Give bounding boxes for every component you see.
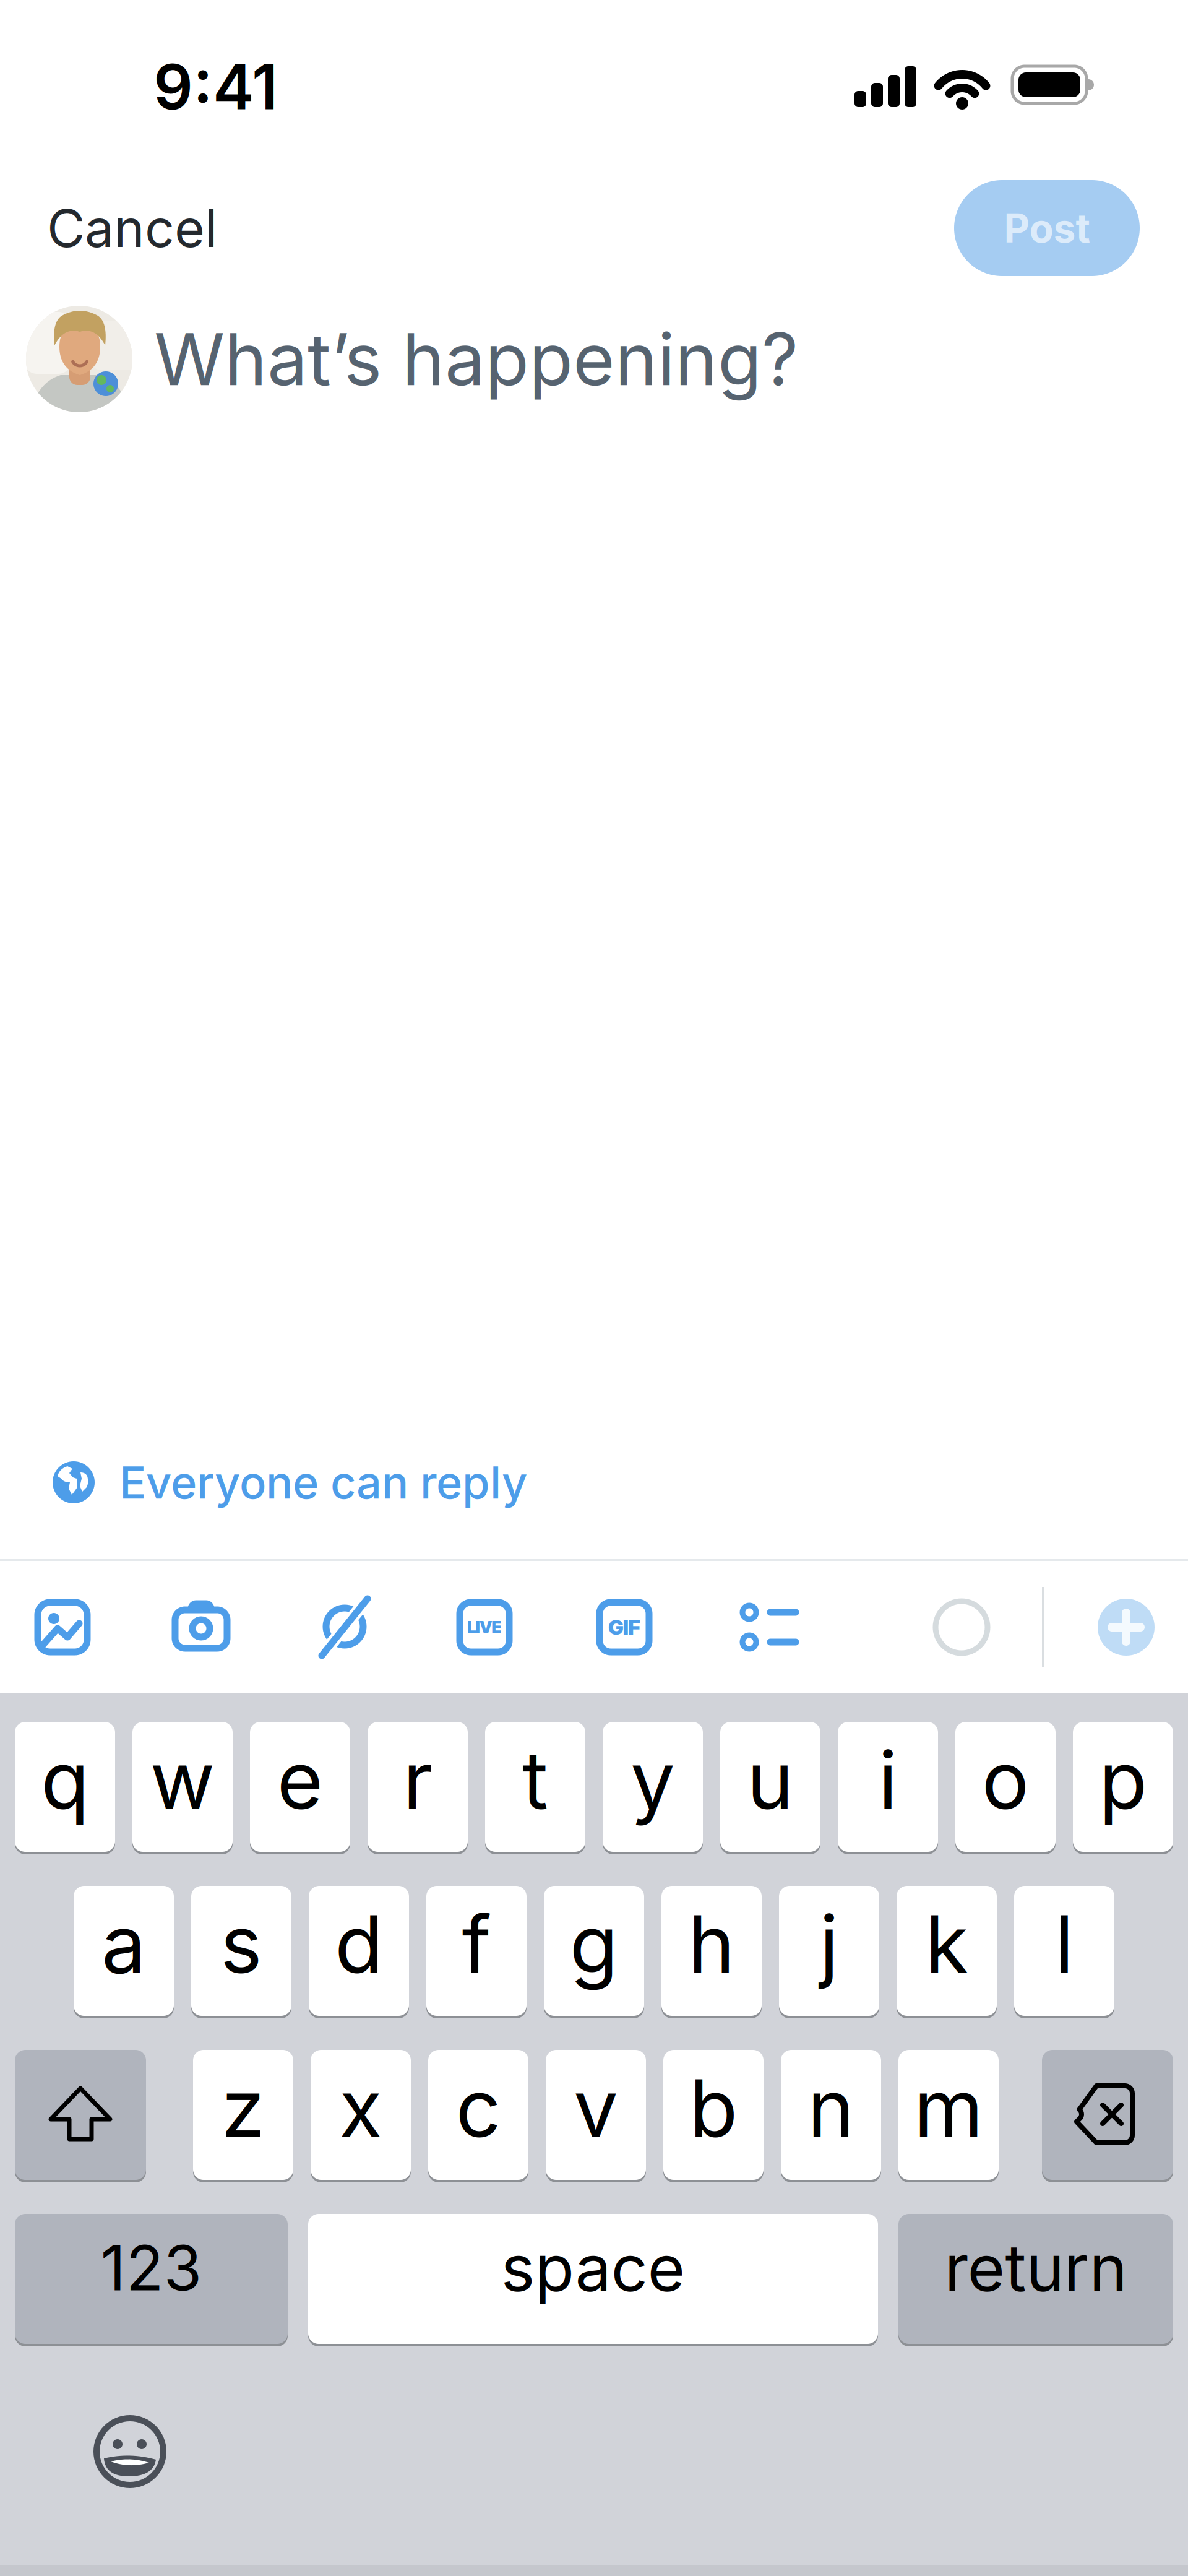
button[interactable]: e [250,1722,350,1854]
staticText: r [403,1733,433,1827]
staticText: f [462,1897,491,1991]
button[interactable] [26,306,132,412]
button[interactable]: x [311,2050,411,2182]
staticText: What’s happening? [154,317,798,401]
button[interactable] [1098,1599,1155,1656]
staticText: e [277,1733,323,1827]
button[interactable] [34,1599,91,1656]
staticText: u [747,1733,794,1827]
staticText: y [631,1733,675,1827]
staticText: t [522,1733,548,1827]
staticText: Post [1004,205,1090,251]
button[interactable]: p [1073,1722,1173,1854]
button[interactable]: Post [954,180,1140,276]
staticText: k [925,1897,968,1991]
button[interactable]: n [781,2050,881,2182]
staticText: 123 [101,2231,202,2304]
button[interactable] [738,1599,798,1656]
button[interactable]: o [955,1722,1056,1854]
button[interactable] [1042,2050,1173,2182]
staticText: p [1099,1733,1147,1827]
button[interactable]: space [308,2214,878,2346]
button[interactable]: t [485,1722,585,1854]
staticText: s [220,1897,262,1991]
staticText: a [101,1897,146,1991]
staticText: q [41,1733,89,1827]
button[interactable]: a [74,1886,174,2018]
button[interactable]: y [603,1722,703,1854]
button[interactable]: j [779,1886,879,2018]
staticText: 9:41 [153,50,278,123]
button[interactable]: u [720,1722,820,1854]
button[interactable]: LIVE [456,1599,513,1656]
staticText: GIF [608,1615,640,1639]
button[interactable]: c [428,2050,528,2182]
staticText: LIVE [467,1617,502,1637]
button[interactable] [173,1599,230,1656]
staticText: w [150,1733,215,1827]
staticText: o [982,1733,1029,1827]
button[interactable]: m [898,2050,999,2182]
button[interactable]: return [898,2214,1173,2346]
button[interactable] [15,2050,146,2182]
button[interactable]: 123 [15,2214,288,2346]
button[interactable]: i [838,1722,938,1854]
button[interactable] [316,1599,372,1656]
staticText: m [914,2061,983,2155]
button[interactable]: s [191,1886,291,2018]
button[interactable]: k [897,1886,997,2018]
staticText: j [820,1897,839,1991]
button[interactable]: w [132,1722,233,1854]
button[interactable]: b [663,2050,764,2182]
button[interactable]: l [1014,1886,1114,2018]
button[interactable]: Cancel [47,197,217,259]
button[interactable]: q [15,1722,115,1854]
staticText: h [688,1897,735,1991]
button[interactable]: g [544,1886,644,2018]
staticText: l [1055,1897,1074,1991]
staticText: b [689,2061,738,2155]
staticText: g [570,1897,618,1991]
staticText: i [878,1733,897,1827]
button[interactable]: r [368,1722,468,1854]
button[interactable]: d [309,1886,409,2018]
staticText: z [221,2061,265,2155]
staticText: d [335,1897,383,1991]
button[interactable]: Everyone can reply [0,1458,1188,1507]
staticText: n [807,2061,854,2155]
button[interactable] [93,2414,167,2489]
button[interactable]: f [426,1886,527,2018]
button[interactable]: v [546,2050,646,2182]
staticText: Everyone can reply [119,1456,527,1509]
staticText: return [945,2230,1127,2306]
staticText: x [339,2061,382,2155]
button[interactable]: h [661,1886,762,2018]
staticText: Cancel [47,197,217,259]
button[interactable]: GIF [596,1599,653,1656]
staticText: c [456,2061,501,2155]
staticText: space [501,2230,685,2306]
staticText: v [574,2061,618,2155]
button[interactable]: z [193,2050,293,2182]
